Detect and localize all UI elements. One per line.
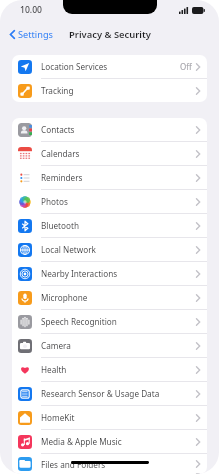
button[interactable]: Nearby Interactions (12, 262, 207, 286)
staticText: Speech Recognition (41, 316, 196, 327)
staticText: Local Network (41, 244, 196, 255)
button[interactable]: Bluetooth (12, 214, 207, 238)
button[interactable]: Photos (12, 190, 207, 214)
button[interactable]: Media & Apple Music (12, 430, 207, 454)
button[interactable]: Location Services (12, 55, 207, 79)
staticText: Location Services (41, 61, 180, 72)
staticText: Research Sensor & Usage Data (41, 388, 196, 399)
staticText: Files and Folders (41, 459, 196, 470)
staticText: Microphone (41, 292, 196, 303)
staticText: Media & Apple Music (41, 436, 196, 447)
staticText: Privacy & Security (69, 28, 151, 41)
other: Home indicator (71, 461, 149, 464)
button[interactable]: Calendars (12, 142, 207, 166)
staticText: Reminders (41, 172, 196, 183)
staticText: 10.00 (20, 4, 43, 16)
button[interactable]: Microphone (12, 286, 207, 310)
button[interactable]: Settings (6, 25, 57, 44)
staticText: Photos (41, 196, 196, 207)
staticText: Tracking (41, 85, 196, 96)
button[interactable]: Tracking (12, 79, 207, 102)
staticText: Camera (41, 340, 196, 351)
staticText: Off (180, 61, 192, 72)
staticText: Contacts (41, 124, 196, 135)
button[interactable]: HomeKit (12, 406, 207, 430)
staticText: Calendars (41, 148, 196, 159)
button[interactable]: Files and Folders (12, 454, 207, 474)
button[interactable]: Local Network (12, 238, 207, 262)
staticText: Health (41, 364, 196, 375)
button[interactable]: Camera (12, 334, 207, 358)
button[interactable]: Research Sensor & Usage Data (12, 382, 207, 406)
staticText: Bluetooth (41, 220, 196, 231)
button[interactable]: Speech Recognition (12, 310, 207, 334)
button[interactable]: Health (12, 358, 207, 382)
staticText: Nearby Interactions (41, 268, 196, 279)
button[interactable]: Contacts (12, 118, 207, 142)
button[interactable]: Reminders (12, 166, 207, 190)
staticText: Settings (18, 28, 53, 41)
staticText: HomeKit (41, 412, 196, 423)
